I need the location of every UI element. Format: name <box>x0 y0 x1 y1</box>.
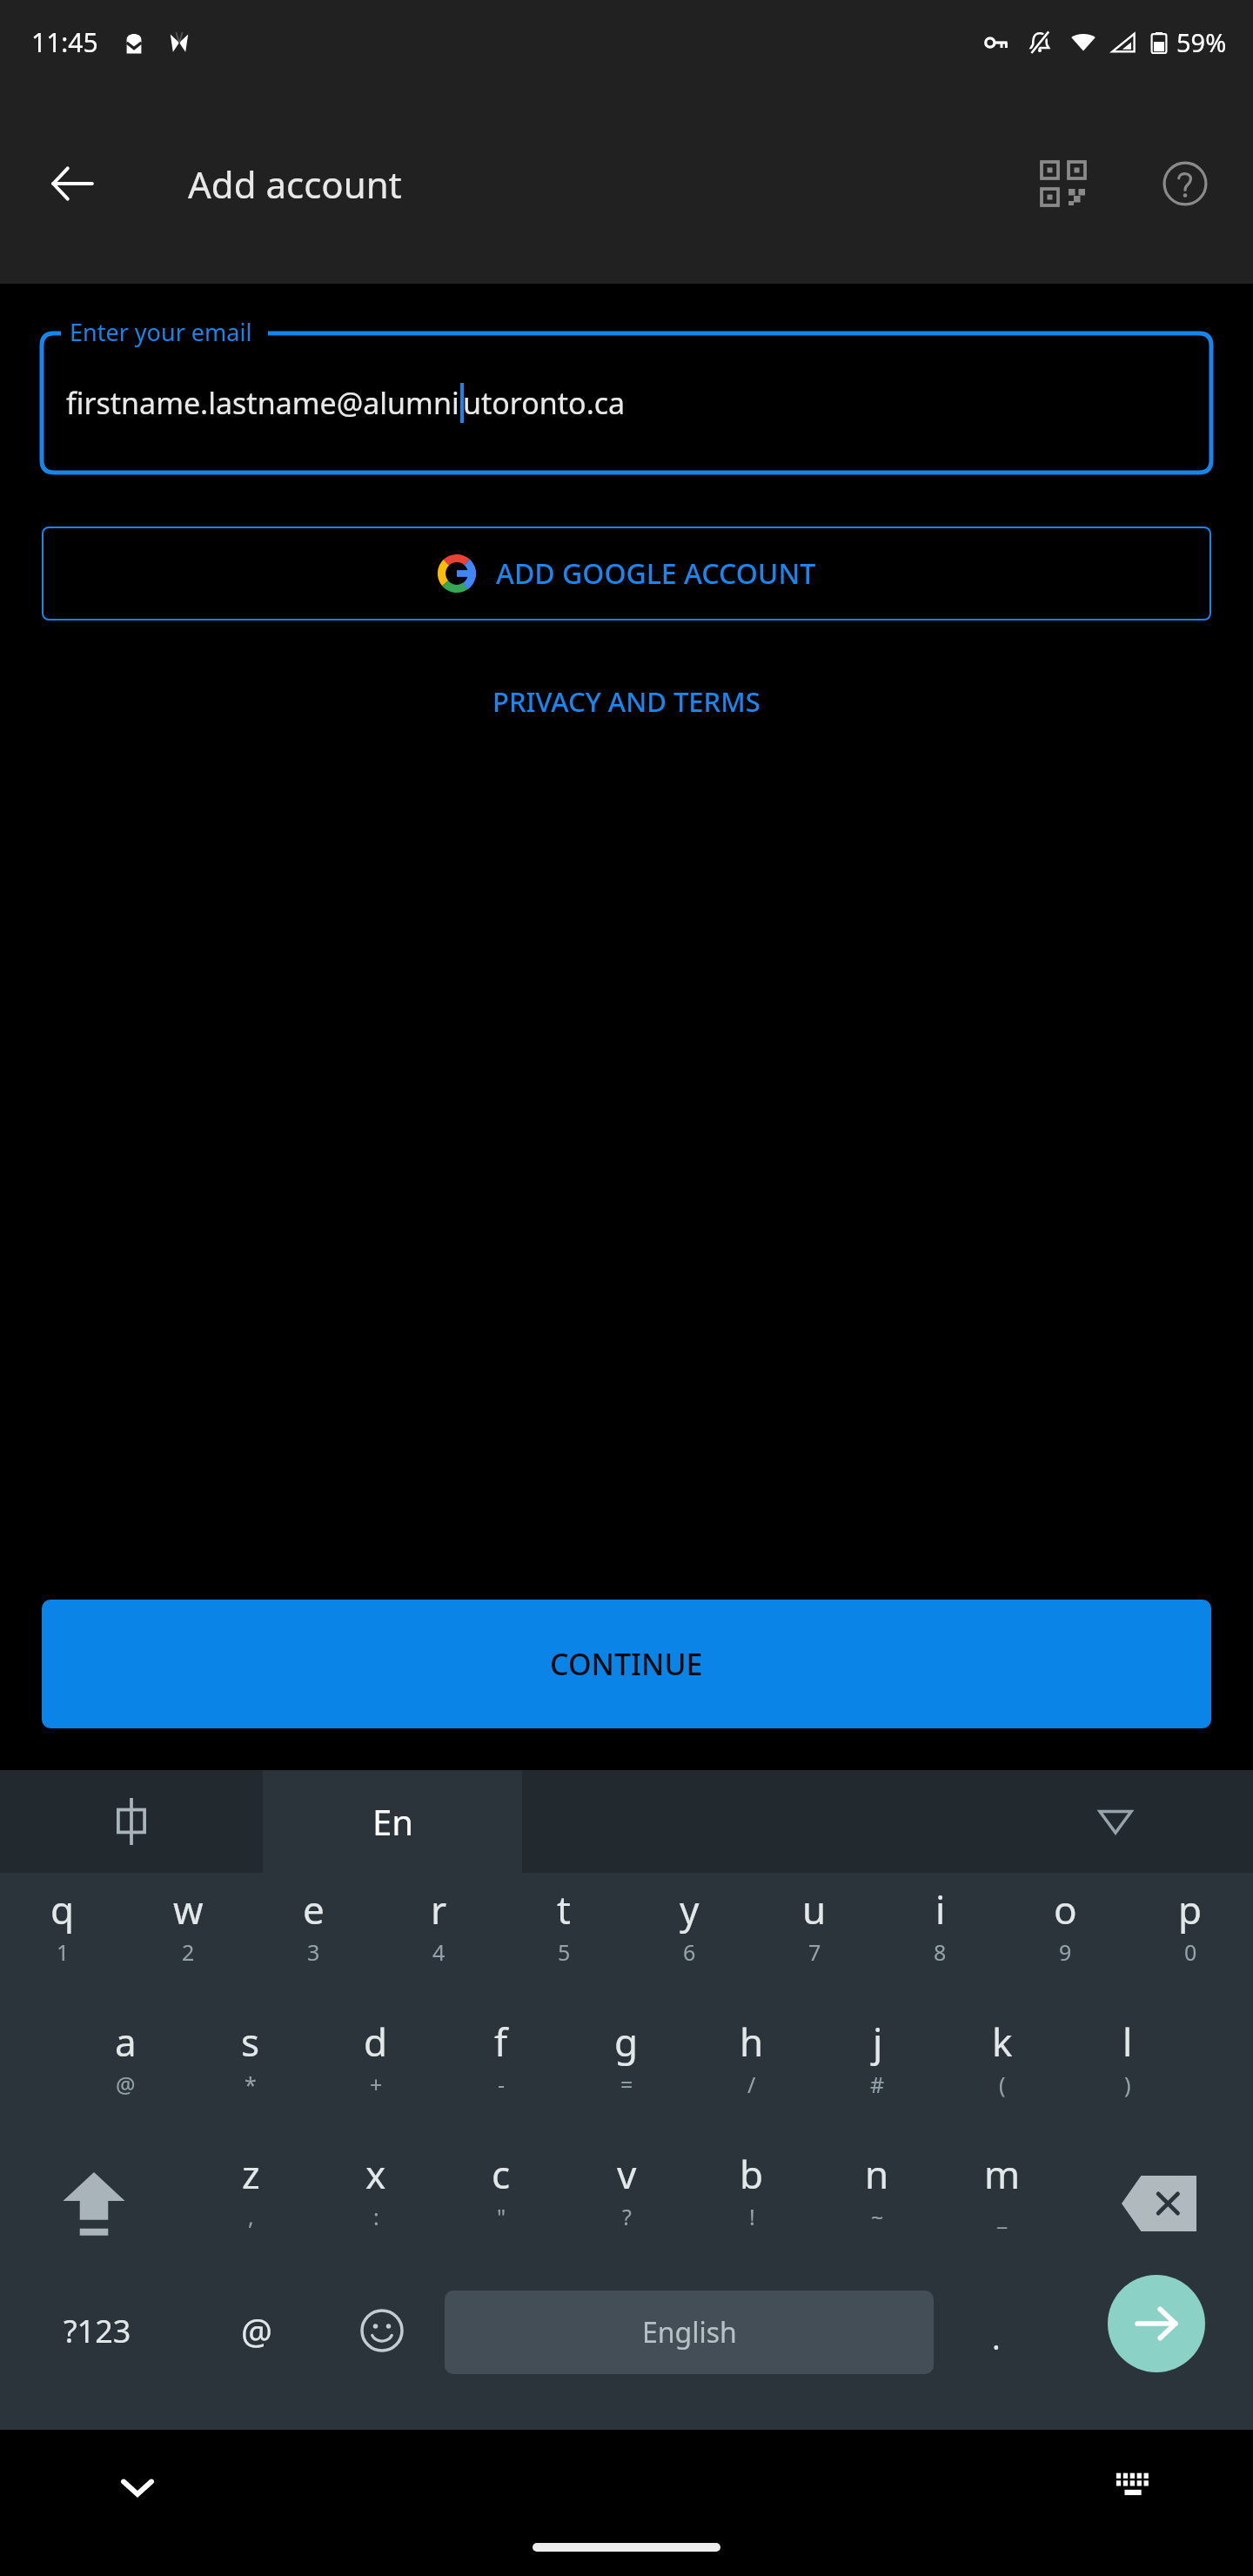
button[interactable]: a <box>63 2005 188 2137</box>
staticText: 9 <box>1059 1937 1072 1967</box>
staticText: * <box>245 2070 257 2099</box>
staticText: 3 <box>307 1937 320 1967</box>
button[interactable]: d <box>313 2005 439 2137</box>
staticText: l <box>1122 2016 1133 2068</box>
button[interactable]: j <box>814 2005 940 2137</box>
staticText: m <box>984 2148 1021 2200</box>
staticText: h <box>740 2016 764 2068</box>
button[interactable]: CONTINUE <box>42 1600 1211 1728</box>
staticText: , <box>248 2202 254 2231</box>
button[interactable]: i <box>877 1873 1002 2005</box>
button[interactable]: p <box>1128 1873 1253 2005</box>
staticText: p <box>1178 1883 1203 1935</box>
button[interactable]: English <box>445 2291 934 2374</box>
button[interactable]: ?123 <box>0 2270 194 2430</box>
staticText: ?123 <box>64 2310 131 2352</box>
button[interactable]: t <box>501 1873 626 2005</box>
staticText: 7 <box>808 1937 821 1967</box>
button[interactable]: Enter your email <box>42 333 1211 473</box>
button[interactable]: Chinese input <box>0 1770 263 1873</box>
staticText: 59% <box>1176 25 1227 59</box>
button[interactable]: g <box>564 2005 689 2137</box>
staticText: e <box>303 1883 325 1935</box>
button[interactable]: PRIVACY AND TERMS <box>472 673 781 730</box>
staticText: 1 <box>57 1937 70 1967</box>
button[interactable]: n <box>814 2137 940 2270</box>
staticText: ( <box>999 2070 1006 2099</box>
staticText: En <box>372 1798 413 1845</box>
button[interactable]: Back <box>24 136 120 231</box>
button[interactable]: y <box>626 1873 752 2005</box>
button[interactable]: v <box>564 2137 689 2270</box>
button[interactable]: Switch keyboard <box>1093 2445 1176 2529</box>
staticText: firstname.lastname@alumni <box>66 383 459 423</box>
staticText: English <box>642 2313 737 2351</box>
button[interactable]: m <box>940 2137 1065 2270</box>
button[interactable]: u <box>752 1873 877 2005</box>
staticText: v <box>617 2148 637 2200</box>
staticText: # <box>870 2070 885 2099</box>
staticText: PRIVACY AND TERMS <box>492 683 761 720</box>
button[interactable]: w <box>125 1873 251 2005</box>
staticText: k <box>992 2016 1013 2068</box>
button[interactable]: l <box>1065 2005 1190 2137</box>
staticText: 5 <box>558 1937 571 1967</box>
button[interactable]: . <box>934 2270 1059 2430</box>
button[interactable]: k <box>940 2005 1065 2137</box>
button[interactable]: @ <box>194 2270 319 2430</box>
staticText: ! <box>749 2202 755 2231</box>
staticText: @ <box>241 2307 272 2354</box>
staticText: o <box>1054 1883 1077 1935</box>
staticText: i <box>935 1883 946 1935</box>
button[interactable]: Collapse keyboard options <box>1076 1782 1155 1861</box>
button[interactable]: Hide keyboard <box>96 2445 179 2529</box>
button[interactable]: r <box>376 1873 501 2005</box>
button[interactable]: x <box>313 2137 439 2270</box>
button[interactable]: Emoji <box>319 2270 445 2430</box>
button[interactable]: En <box>263 1770 522 1873</box>
staticText: a <box>115 2016 137 2068</box>
staticText: Add account <box>188 159 402 209</box>
staticText: 11:45 <box>31 24 98 60</box>
staticText: z <box>242 2148 260 2200</box>
staticText: ) <box>1124 2070 1131 2099</box>
button[interactable]: f <box>439 2005 564 2137</box>
button[interactable]: o <box>1002 1873 1128 2005</box>
staticText: ? <box>622 2202 632 2231</box>
staticText: 8 <box>934 1937 947 1967</box>
button[interactable]: c <box>439 2137 564 2270</box>
button[interactable]: Shift <box>0 2137 188 2270</box>
staticText: q <box>50 1883 75 1935</box>
button[interactable]: q <box>0 1873 125 2005</box>
button[interactable]: ADD GOOGLE ACCOUNT <box>42 527 1211 621</box>
staticText: ~ <box>871 2202 884 2231</box>
button[interactable]: Help <box>1138 137 1232 231</box>
staticText: d <box>364 2016 388 2068</box>
button[interactable]: Scan QR code <box>1016 137 1110 231</box>
button[interactable]: Backspace <box>1065 2137 1253 2270</box>
staticText: - <box>498 2070 506 2099</box>
staticText: CONTINUE <box>550 1644 703 1684</box>
staticText: x <box>365 2148 386 2200</box>
staticText: 6 <box>683 1937 696 1967</box>
button[interactable]: h <box>689 2005 814 2137</box>
staticText: w <box>173 1883 204 1935</box>
button[interactable]: e <box>251 1873 376 2005</box>
staticText: u <box>802 1883 827 1935</box>
button[interactable]: z <box>188 2137 313 2270</box>
button[interactable]: Enter <box>1108 2275 1205 2372</box>
staticText: : <box>373 2202 379 2231</box>
staticText: . <box>992 2317 1001 2359</box>
staticText: " <box>497 2202 506 2231</box>
staticText: 4 <box>432 1937 446 1967</box>
button[interactable]: s <box>188 2005 313 2137</box>
staticText: ADD GOOGLE ACCOUNT <box>496 554 816 593</box>
staticText: r <box>431 1883 447 1935</box>
staticText: 2 <box>182 1937 195 1967</box>
staticText: + <box>370 2070 383 2099</box>
staticText: / <box>747 2070 756 2099</box>
staticText: c <box>492 2148 511 2200</box>
staticText: utoronto.ca <box>463 383 626 423</box>
staticText: @ <box>116 2070 136 2099</box>
button[interactable]: b <box>689 2137 814 2270</box>
